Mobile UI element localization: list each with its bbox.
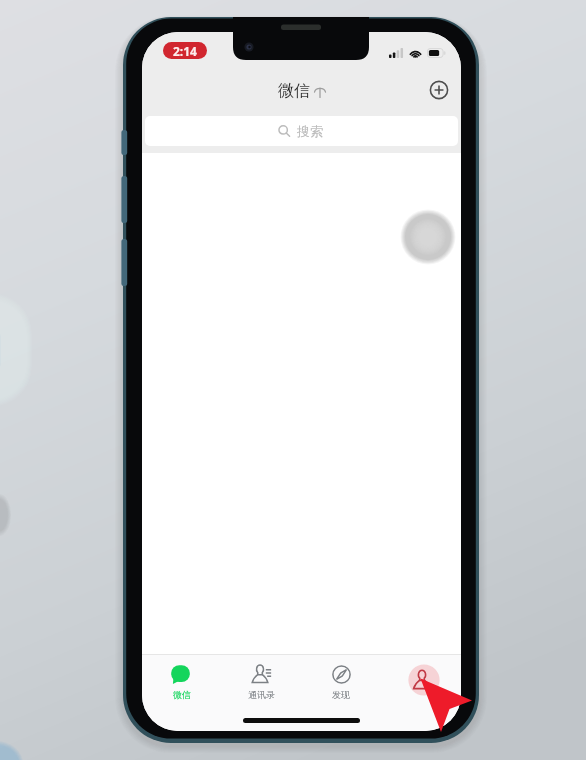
button[interactable]: 我	[381, 654, 461, 704]
button[interactable]: 通讯录	[221, 654, 301, 704]
button[interactable]: 搜索	[145, 116, 458, 146]
button[interactable]: Assistive touch	[400, 209, 456, 265]
staticText: 搜索	[297, 123, 323, 139]
staticText: 发现	[332, 689, 350, 700]
staticText: 2:14	[173, 43, 197, 59]
button[interactable]: 微信	[142, 654, 221, 704]
staticText: 通讯录	[248, 689, 275, 700]
button[interactable]: Add	[425, 76, 453, 104]
staticText: 微信	[278, 81, 310, 101]
staticText: 微信	[173, 689, 191, 700]
button[interactable]: 发现	[301, 654, 381, 704]
